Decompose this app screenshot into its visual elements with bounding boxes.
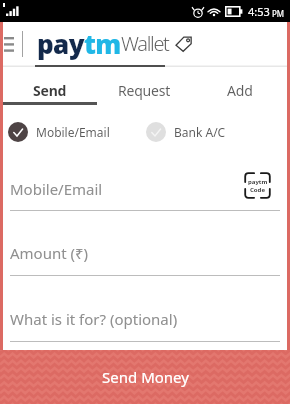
button[interactable]: Amount (₹)	[10, 236, 280, 276]
staticText: Mobile/Email	[36, 124, 110, 140]
button[interactable]: Request	[97, 66, 192, 105]
staticText: Wallet	[121, 30, 169, 57]
staticText: pay	[37, 26, 84, 61]
staticText: 4:53	[248, 4, 270, 19]
button[interactable]: Send Money	[0, 350, 290, 404]
staticText: Request	[118, 81, 171, 100]
staticText: Send	[33, 81, 67, 100]
button[interactable]: Add	[192, 66, 287, 105]
staticText: tm	[84, 26, 121, 61]
button[interactable]: Scan Paytm Code	[244, 172, 271, 199]
staticText: Amount (₹)	[10, 243, 89, 263]
staticText: PM	[272, 8, 285, 19]
button[interactable]: Send	[3, 66, 97, 105]
button[interactable]: What is it for? (optional)	[10, 302, 280, 342]
staticText: Send Money	[102, 367, 189, 387]
staticText: Add	[227, 81, 253, 100]
staticText: Bank A/C	[174, 124, 226, 140]
staticText: What is it for? (optional)	[10, 309, 178, 329]
staticText: paytm	[248, 178, 268, 186]
staticText: Code	[250, 186, 265, 194]
button[interactable]: Bank A/C	[146, 122, 226, 142]
button[interactable]: Mobile/Email	[8, 122, 110, 142]
button[interactable]: Menu	[3, 22, 22, 65]
staticText: Mobile/Email	[10, 179, 253, 199]
